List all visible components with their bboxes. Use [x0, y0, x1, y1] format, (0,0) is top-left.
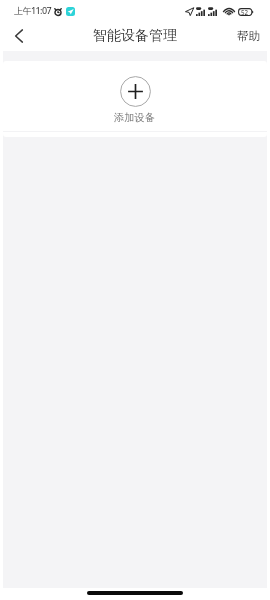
staticText: 帮助: [237, 29, 260, 43]
staticText: 智能设备管理: [93, 27, 177, 45]
staticText: 上午11:07: [14, 4, 52, 16]
button[interactable]: 帮助: [226, 20, 270, 51]
button[interactable]: Back: [3, 20, 35, 51]
button[interactable]: 添加设备: [3, 61, 267, 137]
staticText: 添加设备: [114, 111, 156, 124]
staticText: 52: [241, 8, 249, 16]
